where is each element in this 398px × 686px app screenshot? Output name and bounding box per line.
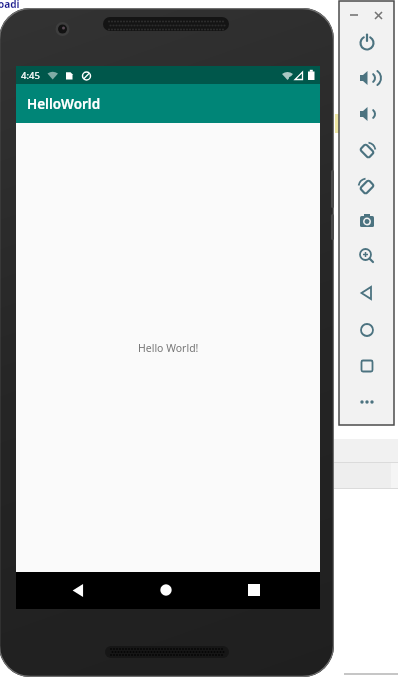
staticText: Hello World! xyxy=(138,341,199,355)
button[interactable] xyxy=(239,575,269,605)
button[interactable] xyxy=(151,575,181,605)
button[interactable] xyxy=(352,136,381,164)
button[interactable] xyxy=(63,575,93,605)
button[interactable] xyxy=(352,64,381,92)
button[interactable] xyxy=(347,8,361,22)
button[interactable] xyxy=(352,28,381,56)
button[interactable] xyxy=(352,352,381,380)
staticText: oadi xyxy=(0,0,20,11)
button[interactable] xyxy=(352,242,381,270)
button[interactable] xyxy=(352,279,381,307)
button[interactable] xyxy=(352,388,381,416)
button[interactable] xyxy=(352,172,381,200)
staticText: HelloWorld xyxy=(27,95,101,113)
button[interactable] xyxy=(371,8,385,22)
button[interactable] xyxy=(352,316,381,344)
button[interactable] xyxy=(352,100,381,128)
staticText: 4:45 xyxy=(21,69,40,82)
button[interactable] xyxy=(352,207,381,235)
